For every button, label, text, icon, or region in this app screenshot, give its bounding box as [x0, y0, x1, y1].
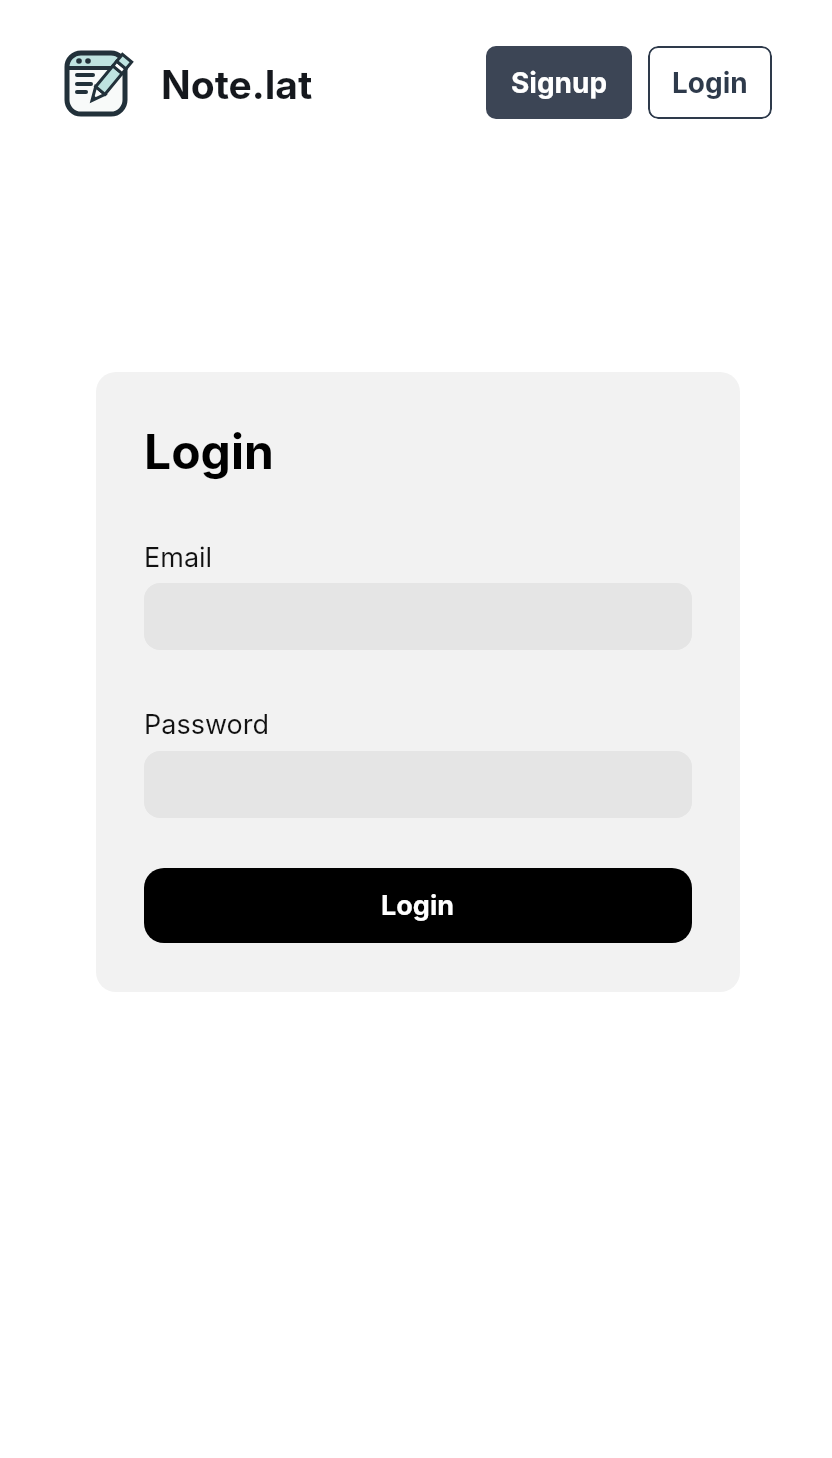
- staticText: Password: [144, 708, 269, 741]
- staticText: Login: [672, 66, 748, 100]
- staticText: Signup: [511, 66, 608, 100]
- button[interactable]: Login: [648, 46, 772, 119]
- staticText: Login: [144, 422, 274, 480]
- staticText: Note.lat: [161, 61, 313, 108]
- staticText: Login: [381, 889, 455, 922]
- staticText: Email: [144, 541, 213, 574]
- button[interactable]: Signup: [486, 46, 632, 119]
- button[interactable]: Login: [144, 868, 692, 943]
